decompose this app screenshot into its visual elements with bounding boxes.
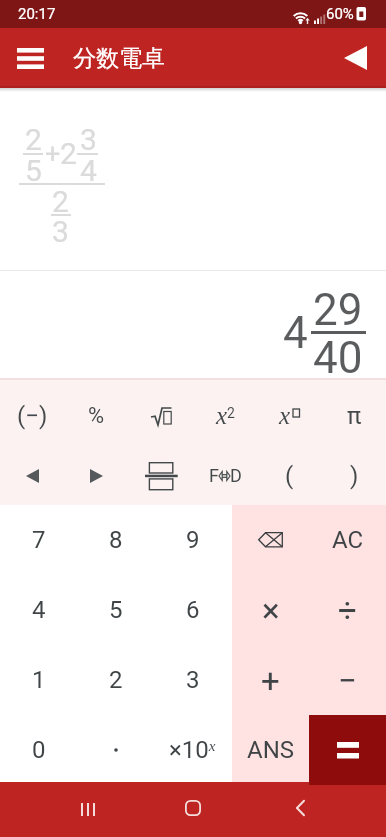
button[interactable]: F	[193, 446, 257, 505]
button[interactable]	[0, 446, 64, 505]
staticText: 2	[109, 666, 123, 694]
staticText: +	[45, 138, 61, 170]
staticText: ×10x	[169, 736, 216, 764]
button[interactable]: (	[257, 446, 321, 505]
staticText: 4	[80, 153, 97, 188]
staticText: 29	[313, 284, 363, 336]
button[interactable]: 8	[77, 505, 154, 575]
button[interactable]	[232, 505, 309, 575]
staticText: (	[285, 462, 294, 490]
staticText: 8	[109, 526, 123, 554]
staticText: D	[230, 465, 242, 486]
button[interactable]: ANS	[232, 715, 309, 785]
button[interactable]: −	[309, 645, 386, 715]
staticText: ÷	[338, 591, 357, 630]
staticText: ×	[262, 591, 280, 630]
button[interactable]: π	[322, 385, 386, 446]
staticText: 3	[186, 666, 200, 694]
button[interactable]: 6	[154, 575, 231, 645]
staticText: 3	[80, 122, 97, 157]
staticText: 40	[313, 332, 363, 384]
button[interactable]: ×	[232, 575, 309, 645]
button[interactable]	[278, 786, 322, 830]
button[interactable]: 4	[0, 575, 77, 645]
button[interactable]: x2	[193, 385, 257, 446]
button[interactable]: %	[64, 385, 128, 446]
staticText: %	[88, 403, 105, 429]
button[interactable]: 1	[0, 645, 77, 715]
staticText: 2	[60, 136, 77, 171]
button[interactable]: +	[232, 645, 309, 715]
button[interactable]	[66, 787, 110, 831]
staticText: AC	[332, 526, 364, 554]
staticText: 6	[186, 596, 200, 624]
staticText: (−)	[17, 402, 48, 430]
staticText: x2	[216, 402, 235, 430]
staticText: 分数電卓	[73, 44, 165, 73]
button[interactable]: ÷	[309, 575, 386, 645]
button[interactable]: ×10x	[154, 715, 231, 785]
staticText: x	[279, 402, 291, 430]
staticText: 20:17	[18, 5, 56, 23]
button[interactable]	[170, 785, 216, 831]
staticText: 4	[283, 307, 308, 359]
button[interactable]	[309, 715, 386, 785]
staticText: 1	[32, 666, 46, 694]
button[interactable]	[129, 385, 193, 446]
staticText: ANS	[247, 736, 295, 764]
button[interactable]: 5	[77, 575, 154, 645]
staticText: 7	[32, 526, 46, 554]
staticText: +	[261, 661, 280, 700]
staticText: 0	[32, 736, 46, 764]
button[interactable]: 9	[154, 505, 231, 575]
staticText: 4	[32, 596, 46, 624]
button[interactable]: (−)	[0, 385, 64, 446]
button[interactable]	[8, 36, 52, 80]
staticText: 3	[52, 214, 69, 249]
button[interactable]	[129, 446, 193, 505]
staticText: 5	[25, 153, 42, 188]
button[interactable]	[333, 36, 377, 80]
staticText: 9	[186, 526, 200, 554]
button[interactable]: 0	[0, 715, 77, 785]
staticText: 5	[109, 596, 123, 624]
button[interactable]: 2	[77, 645, 154, 715]
button[interactable]	[77, 715, 154, 785]
staticText: 2	[25, 122, 42, 157]
staticText: 60%	[326, 5, 354, 23]
staticText: F	[209, 465, 219, 486]
staticText: )	[350, 462, 359, 490]
button[interactable]: 7	[0, 505, 77, 575]
staticText: 2	[52, 184, 69, 219]
button[interactable]	[64, 446, 128, 505]
button[interactable]: 3	[154, 645, 231, 715]
staticText: π	[347, 402, 362, 430]
button[interactable]: AC	[309, 505, 386, 575]
button[interactable]: )	[322, 446, 386, 505]
staticText: −	[338, 661, 357, 700]
button[interactable]: x	[257, 385, 321, 446]
